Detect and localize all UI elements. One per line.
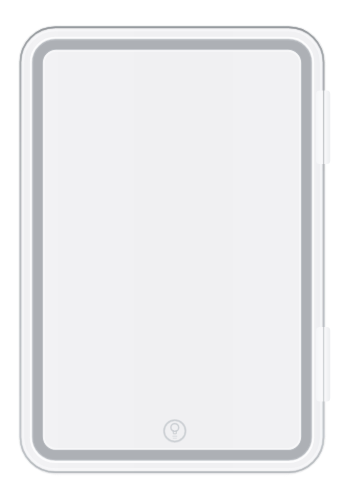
- button[interactable]: LED mirror with light toggle: [0, 0, 347, 500]
